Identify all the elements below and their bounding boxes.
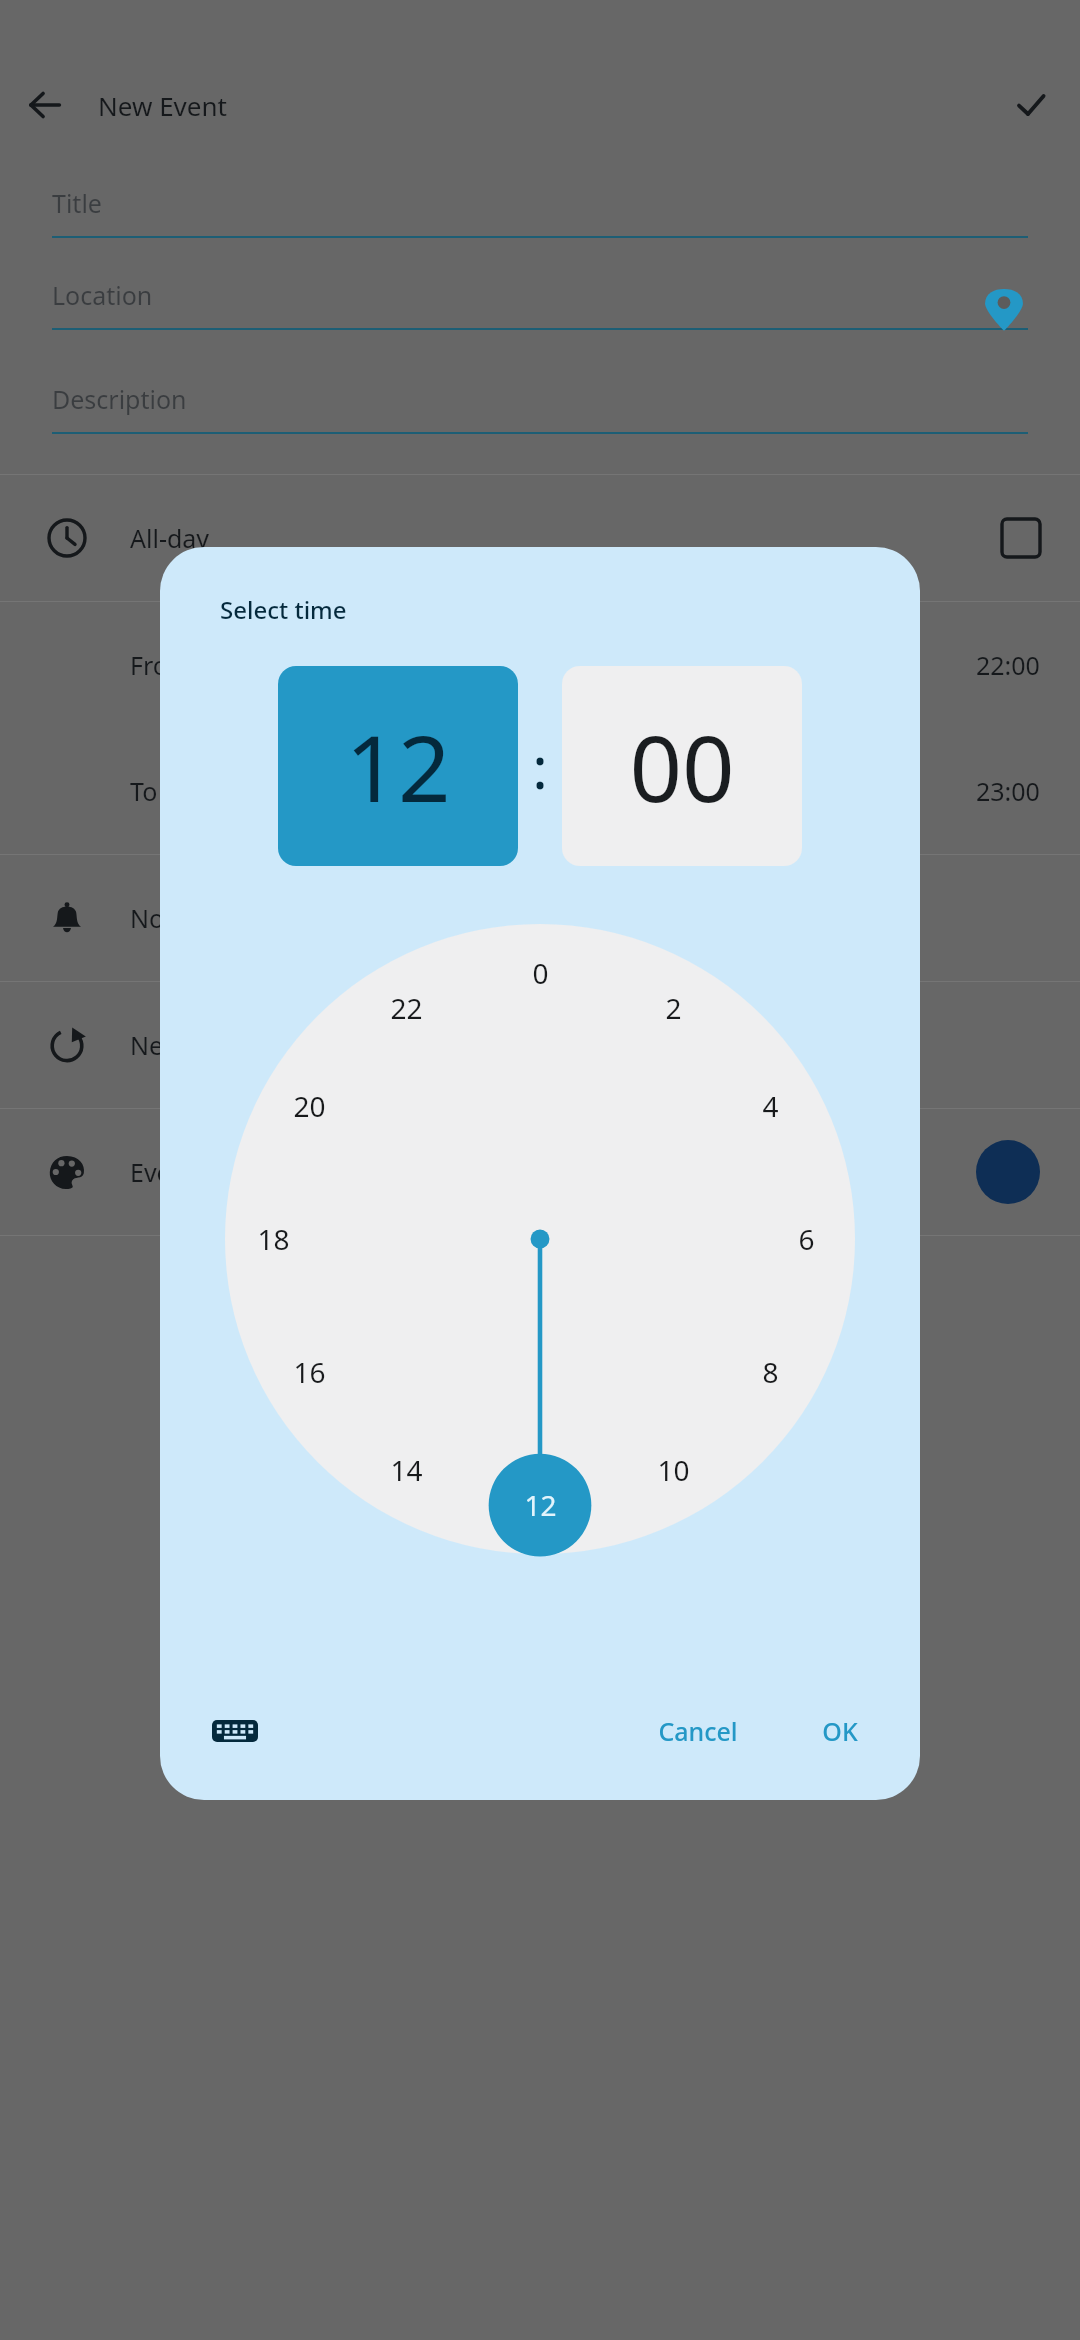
staticText: 2 <box>665 989 682 1027</box>
staticText: To <box>130 774 158 808</box>
staticText: Description <box>52 382 187 416</box>
button[interactable]: 12 <box>278 666 518 866</box>
button[interactable]: 00 <box>562 666 802 866</box>
staticText: Select time <box>220 593 347 626</box>
staticText: : <box>532 727 548 806</box>
staticText: Title <box>52 186 102 220</box>
button[interactable]: Notification <box>0 855 1080 981</box>
staticText: 22 <box>390 989 423 1027</box>
button[interactable]: All-day <box>0 475 1080 601</box>
staticText: 20 <box>293 1087 326 1125</box>
staticText: New Event <box>98 88 227 123</box>
staticText: 22:00 <box>976 648 1040 682</box>
staticText: 4 <box>762 1087 779 1125</box>
button[interactable]: Back <box>14 74 76 136</box>
button[interactable]: To <box>0 728 1080 854</box>
button[interactable]: Never <box>0 982 1080 1108</box>
button[interactable]: Switch to keyboard input <box>200 1696 270 1766</box>
staticText: 12 <box>345 704 451 829</box>
staticText: 6 <box>798 1220 815 1258</box>
staticText: 12 <box>524 1486 557 1524</box>
button[interactable]: Cancel <box>636 1698 760 1764</box>
staticText: 0 <box>532 954 549 992</box>
button[interactable]: OK <box>800 1698 880 1764</box>
button[interactable]: Pick location <box>972 278 1036 342</box>
staticText: 14 <box>390 1451 423 1489</box>
staticText: 16 <box>293 1353 326 1391</box>
button[interactable]: From <box>0 602 1080 728</box>
staticText: Event color <box>130 1155 261 1189</box>
button[interactable]: Save <box>1000 74 1062 136</box>
staticText: Cancel <box>658 1714 738 1748</box>
staticText: Notification <box>130 901 267 935</box>
staticText: 00 <box>629 704 735 829</box>
staticText: Location <box>52 278 153 312</box>
button[interactable]: Event color <box>0 1109 1080 1235</box>
staticText: OK <box>822 1714 858 1748</box>
staticText: All-day <box>130 521 210 555</box>
staticText: 23:00 <box>976 774 1040 808</box>
staticText: From <box>130 648 192 682</box>
staticText: 18 <box>257 1220 290 1258</box>
staticText: 10 <box>657 1451 690 1489</box>
staticText: 8 <box>762 1353 779 1391</box>
staticText: Never <box>130 1028 200 1062</box>
